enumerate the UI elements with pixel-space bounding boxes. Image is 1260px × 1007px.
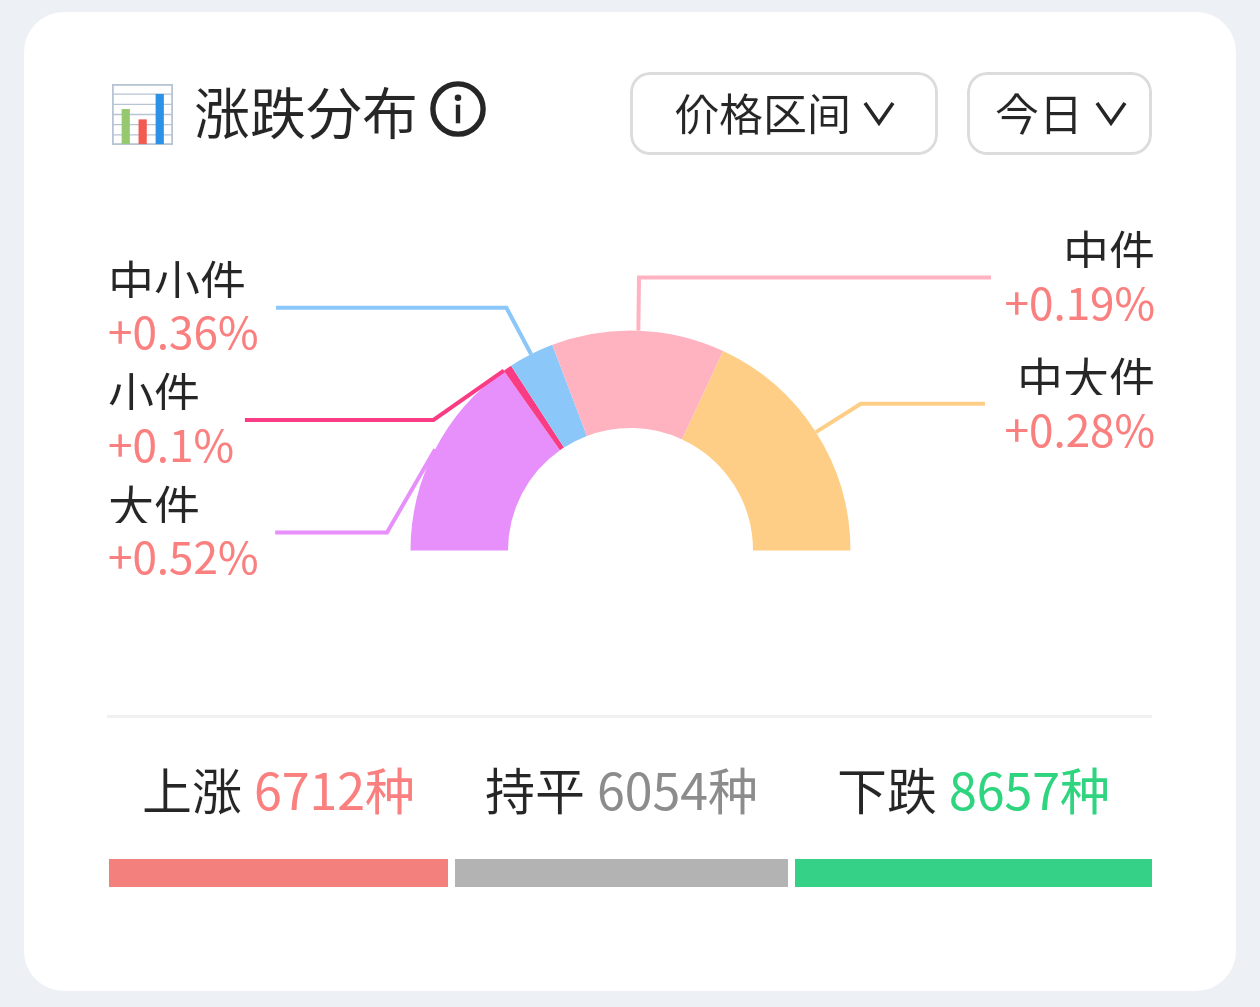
button[interactable]: +0.36% <box>108 298 398 350</box>
staticText: +0.28% <box>865 396 1155 448</box>
button[interactable]: 持平 <box>455 752 788 816</box>
staticText: +0.19% <box>865 269 1155 321</box>
button[interactable]: 下跌 <box>795 752 1152 816</box>
button[interactable]: 中件 <box>865 216 1155 268</box>
button[interactable]: 价格区间 <box>630 72 938 155</box>
button[interactable]: 中小件 <box>108 246 398 298</box>
button[interactable]: 今日 <box>967 72 1152 155</box>
staticText: 8657种 <box>949 752 1110 816</box>
button[interactable]: 大件 <box>108 471 398 523</box>
staticText: 小件 <box>108 358 398 410</box>
staticText: 6712种 <box>254 752 415 816</box>
staticText: 上涨 <box>142 752 254 816</box>
staticText: 下跌 <box>837 752 949 816</box>
button[interactable]: 中大件 <box>865 343 1155 395</box>
button[interactable]: 小件 <box>108 358 398 410</box>
staticText: +0.1% <box>108 411 398 463</box>
staticText: +0.52% <box>108 523 398 575</box>
staticText: 中小件 <box>108 246 398 298</box>
button[interactable]: Info <box>429 80 487 138</box>
button[interactable]: +0.1% <box>108 411 398 463</box>
button[interactable]: 涨跌分布 <box>112 49 487 169</box>
staticText: 中件 <box>865 216 1155 268</box>
staticText: 价格区间 <box>675 80 851 144</box>
button[interactable]: +0.28% <box>865 396 1155 448</box>
other: 涨跌分布环形图 <box>24 12 1236 991</box>
button[interactable]: 上涨 <box>109 752 448 816</box>
button[interactable]: +0.52% <box>108 523 398 575</box>
staticText: 今日 <box>995 80 1083 144</box>
staticText: 持平 <box>485 752 597 816</box>
staticText: 中大件 <box>865 343 1155 395</box>
staticText: 大件 <box>108 471 398 523</box>
staticText: 涨跌分布 <box>194 69 418 150</box>
button[interactable]: +0.19% <box>865 269 1155 321</box>
staticText: 6054种 <box>597 752 758 816</box>
staticText: +0.36% <box>108 298 398 350</box>
